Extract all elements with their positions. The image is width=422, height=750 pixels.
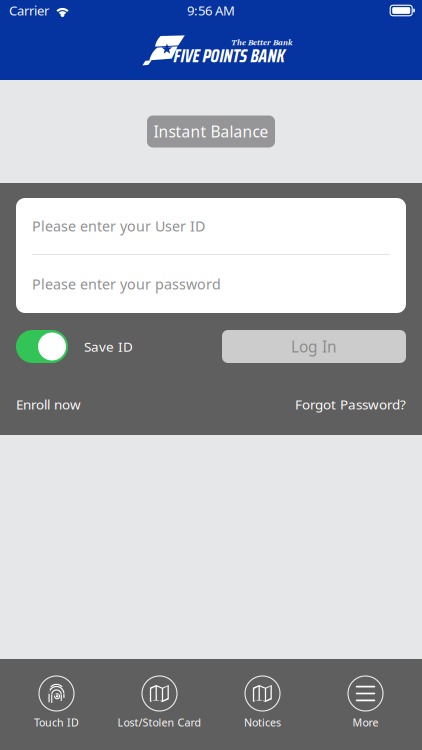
staticText: Forgot Password?	[295, 395, 406, 413]
button[interactable]: More	[314, 659, 417, 750]
staticText: Enroll now	[16, 395, 81, 413]
staticText: More	[352, 715, 378, 729]
button[interactable]: Touch ID	[5, 659, 108, 750]
staticText: Please enter your User ID	[32, 216, 205, 236]
staticText: Notices	[244, 715, 281, 729]
button[interactable]: Forgot Password?	[295, 395, 406, 413]
staticText: Log In	[291, 336, 337, 357]
staticText: Carrier	[9, 2, 49, 19]
staticText: 9:56 AM	[187, 2, 235, 19]
staticText: Instant Balance	[153, 121, 268, 142]
button[interactable]: Instant Balance	[147, 115, 275, 147]
staticText: Please enter your password	[32, 274, 221, 294]
staticText: Save ID	[84, 337, 133, 356]
button[interactable]: Lost/Stolen Card	[108, 659, 211, 750]
staticText: Lost/Stolen Card	[117, 715, 201, 729]
button[interactable]: Log In	[222, 330, 406, 363]
staticText: The Better Bank	[231, 37, 292, 48]
button[interactable]: Save ID	[16, 330, 133, 363]
staticText: FIVE POINTS BANK	[173, 41, 284, 71]
button[interactable]: Notices	[211, 659, 314, 750]
button[interactable]: Enroll now	[16, 395, 81, 413]
staticText: Touch ID	[34, 715, 79, 729]
